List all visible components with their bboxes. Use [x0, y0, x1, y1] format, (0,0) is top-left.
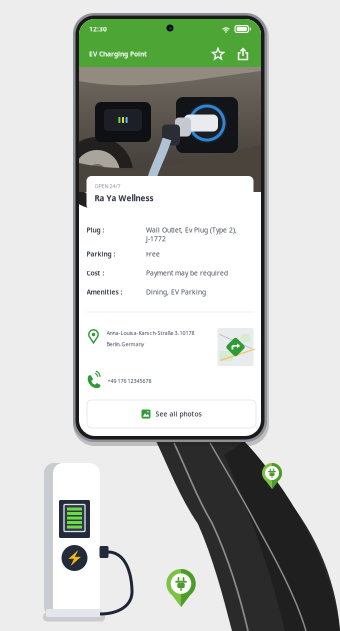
- button[interactable]: Add to favourites: [210, 46, 226, 62]
- staticText: Wall Outlet, Ev Plug (Type 2), J-1772: [146, 225, 237, 243]
- staticText: EV Charging Point: [89, 50, 147, 58]
- button[interactable]: +49 176 12345678: [86, 373, 253, 389]
- staticText: Free: [146, 249, 160, 258]
- staticText: Ra Ya Wellness: [94, 193, 153, 203]
- staticText: Payment may be required: [146, 268, 228, 277]
- staticText: +49 176 12345678: [107, 377, 151, 385]
- button[interactable]: See all photos: [87, 400, 256, 428]
- staticText: Dining, EV Parking: [146, 287, 206, 296]
- staticText: Anna-Louisa-Karsch-Straße 3, 10178: [106, 329, 194, 337]
- staticText: See all photos: [155, 410, 201, 418]
- staticText: Plug :: [86, 225, 104, 234]
- button[interactable]: Anna-Louisa-Karsch-Straße 3, 10178: [86, 328, 253, 366]
- staticText: Cost :: [86, 268, 104, 277]
- staticText: Berlin, Germany: [106, 341, 144, 348]
- staticText: Parking :: [86, 249, 115, 258]
- button[interactable]: Share: [235, 46, 251, 62]
- staticText: 12:30: [89, 25, 107, 33]
- staticText: Amenities :: [86, 287, 122, 296]
- staticText: OPEN 24/7: [94, 183, 120, 190]
